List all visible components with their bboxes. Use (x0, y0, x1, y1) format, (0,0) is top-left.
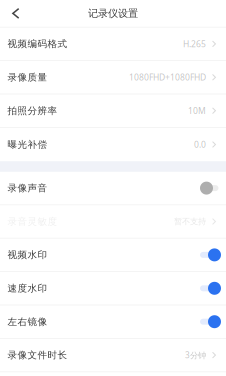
staticText: H.265 (183, 38, 206, 50)
staticText: 0.0 (194, 139, 206, 150)
button[interactable]: 拍照分辨率 (0, 94, 226, 128)
staticText: 录像质量 (7, 71, 47, 83)
button[interactable]: Back (0, 0, 28, 27)
staticText: 记录仪设置 (88, 7, 138, 20)
staticText: 暂不支持 (174, 216, 206, 227)
button[interactable]: 录像声音 (0, 172, 226, 205)
button[interactable]: 视频编码格式 (0, 28, 226, 61)
staticText: 录像声音 (7, 182, 47, 194)
staticText: 3分钟 (185, 349, 206, 361)
staticText: 曝光补偿 (7, 138, 47, 150)
staticText: 速度水印 (7, 282, 47, 294)
staticText: 1080FHD+1080FHD (129, 71, 206, 83)
button[interactable]: 速度水印 (0, 272, 226, 305)
staticText: 10M (188, 105, 206, 116)
staticText: 视频编码格式 (7, 38, 67, 50)
button[interactable]: 录像文件时长 (0, 339, 226, 372)
staticText: 录像文件时长 (7, 349, 67, 361)
button[interactable]: 左右镜像 (0, 305, 226, 339)
staticText: 录音灵敏度 (7, 215, 57, 227)
staticText: 左右镜像 (7, 316, 47, 328)
button[interactable]: 曝光补偿 (0, 128, 226, 161)
button[interactable]: 视频水印 (0, 239, 226, 272)
staticText: 视频水印 (7, 249, 47, 261)
staticText: 拍照分辨率 (7, 105, 57, 117)
button[interactable]: 录像质量 (0, 61, 226, 94)
